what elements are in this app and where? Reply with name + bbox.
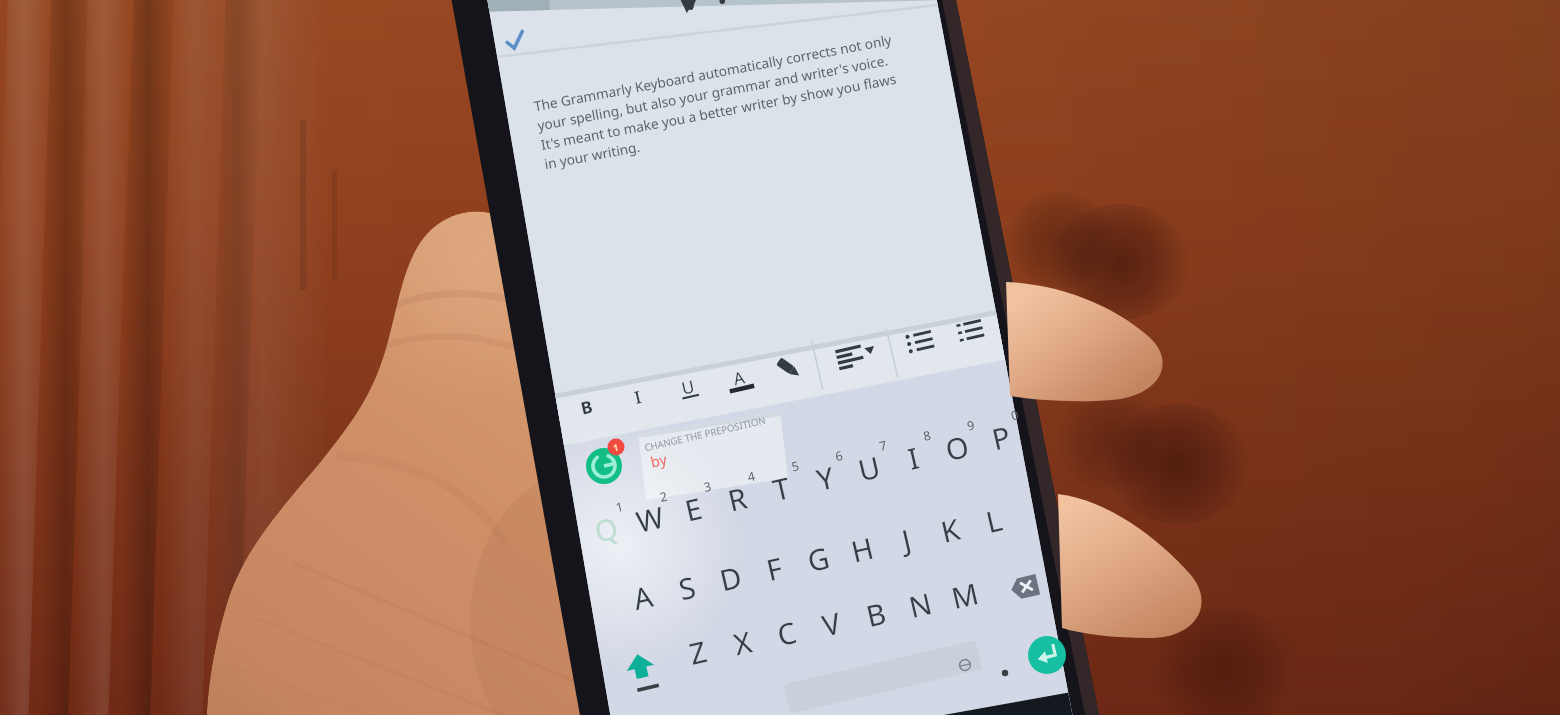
button[interactable]: Grammarly assistant, 1 suggestion	[584, 446, 626, 488]
button[interactable]: Numbered list	[950, 313, 992, 351]
button[interactable]: Bulleted list	[900, 324, 942, 362]
button[interactable]: Alignment	[834, 338, 876, 378]
button[interactable]: U	[849, 447, 891, 489]
button[interactable]: Undo	[672, 0, 724, 30]
button[interactable]: Highlight	[770, 350, 808, 388]
button[interactable]: O	[937, 427, 979, 469]
button[interactable]: M	[945, 575, 987, 617]
button[interactable]: Accept suggestion	[0, 0, 1560, 715]
button[interactable]: Period	[986, 656, 1026, 692]
button[interactable]: Backspace	[1002, 566, 1048, 608]
button[interactable]: E	[673, 488, 715, 530]
button[interactable]: X	[722, 622, 764, 664]
button[interactable]: Text colour	[721, 360, 759, 398]
button[interactable]: K	[930, 509, 972, 551]
button[interactable]: D	[710, 557, 752, 599]
button[interactable]: L	[974, 500, 1016, 542]
button[interactable]: Enter	[1026, 634, 1070, 678]
button[interactable]: F	[754, 548, 796, 590]
button[interactable]: N	[900, 584, 942, 626]
button[interactable]: H	[842, 529, 884, 571]
button[interactable]: V	[811, 603, 853, 645]
button[interactable]: J	[886, 519, 928, 561]
button[interactable]: Accept suggestion	[484, 18, 548, 62]
button[interactable]: Z	[678, 632, 720, 674]
button[interactable]: I	[893, 437, 935, 479]
button[interactable]: Underline	[670, 370, 708, 406]
button[interactable]: Y	[805, 458, 847, 500]
button[interactable]: B	[856, 594, 898, 636]
button[interactable]: A	[623, 577, 665, 619]
button[interactable]: R	[717, 478, 759, 520]
button[interactable]: W	[629, 498, 671, 540]
button[interactable]: P	[981, 417, 1023, 459]
button[interactable]: T	[761, 468, 803, 510]
button[interactable]: Space	[780, 656, 986, 696]
button[interactable]: Italic	[620, 380, 656, 416]
button[interactable]: Q	[586, 509, 628, 551]
button[interactable]: G	[798, 538, 840, 580]
button[interactable]: Change the preposition to by	[636, 410, 788, 502]
button[interactable]: Change keyboard language	[944, 646, 986, 684]
button[interactable]: C	[767, 613, 809, 655]
button[interactable]: S	[666, 567, 708, 609]
button[interactable]: Shift	[618, 644, 664, 696]
button[interactable]: Bold	[570, 390, 608, 426]
